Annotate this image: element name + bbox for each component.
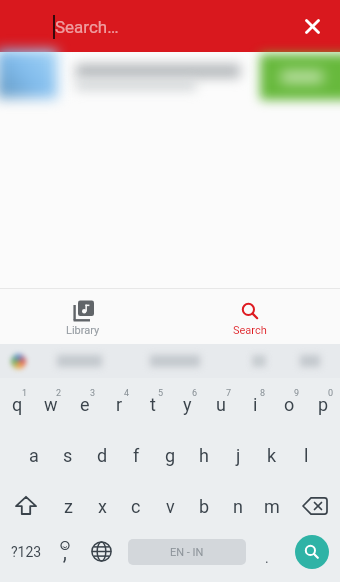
staticText: 0 [328,388,334,399]
button[interactable]: b [187,480,221,531]
button[interactable]: h [187,429,221,480]
button[interactable]: r [102,378,136,429]
staticText: n [233,496,243,517]
staticText: f [133,445,140,466]
staticText: d [97,445,108,466]
staticText: 6 [192,388,198,399]
button[interactable]: g [153,429,187,480]
staticText: y [183,394,192,415]
button[interactable]: t [136,378,170,429]
button[interactable] [284,526,340,577]
button[interactable]: EN - IN [124,526,250,577]
staticText: b [199,496,210,517]
staticText: 9 [294,388,300,399]
staticText: a [29,445,39,466]
staticText: r [116,394,123,415]
staticText: j [236,445,241,466]
staticText: h [199,445,209,466]
staticText: t [150,394,156,415]
staticText: 7 [226,388,232,399]
button[interactable]: j [221,429,255,480]
button[interactable]: p [306,378,340,429]
staticText: 8 [260,388,266,399]
staticText: 3 [90,388,96,399]
staticText: Library [66,324,100,337]
staticText: ?123 [11,544,42,560]
button[interactable]: Library [0,289,170,344]
button[interactable]: f [119,429,153,480]
staticText: z [64,496,73,517]
button[interactable]: y [170,378,204,429]
staticText: 4 [124,388,130,399]
staticText: 5 [158,388,164,399]
button[interactable]: w [34,378,68,429]
button[interactable] [289,480,340,531]
button[interactable]: z [51,480,85,531]
staticText: o [284,394,295,415]
button[interactable]: x [85,480,119,531]
button[interactable] [0,480,51,531]
button[interactable]: i [238,378,272,429]
button[interactable] [78,526,124,577]
button[interactable]: q [0,378,34,429]
button[interactable]: v [153,480,187,531]
staticText: Search… [55,17,119,37]
staticText: c [131,496,141,517]
button[interactable]: n [221,480,255,531]
staticText: 2 [56,388,62,399]
button[interactable]: Search [170,289,340,344]
staticText: w [44,394,58,415]
staticText: e [80,394,90,415]
staticText: . [265,550,269,566]
button[interactable]: e [68,378,102,429]
staticText: x [98,496,107,517]
staticText: p [318,394,329,415]
staticText: 1 [22,388,28,399]
button[interactable]: a [17,429,51,480]
button[interactable]: k [255,429,289,480]
button[interactable] [0,52,340,100]
button[interactable]: ?123 [0,526,52,577]
button[interactable]: . [250,526,284,577]
staticText: g [165,445,176,466]
staticText: EN - IN [170,546,204,559]
staticText: s [63,445,73,466]
staticText: q [12,394,23,415]
staticText: m [264,496,280,517]
staticText: k [267,445,277,466]
button[interactable]: u [204,378,238,429]
staticText: l [304,445,309,466]
staticText: i [253,394,258,415]
button[interactable]: s [51,429,85,480]
button[interactable]: c [119,480,153,531]
button[interactable]: o [272,378,306,429]
staticText: v [166,496,175,517]
staticText: u [216,394,226,415]
button[interactable]: d [85,429,119,480]
button[interactable] [292,6,332,46]
staticText: Search [233,324,267,337]
button[interactable]: m [255,480,289,531]
button[interactable]: l [289,429,323,480]
button[interactable] [52,526,78,577]
